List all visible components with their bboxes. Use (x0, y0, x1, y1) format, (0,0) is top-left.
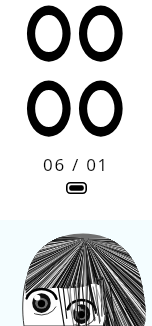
button[interactable]: Battery (66, 182, 87, 194)
button[interactable]: 06 / 01 (43, 153, 109, 176)
staticText: 06 / 01 (43, 153, 109, 176)
